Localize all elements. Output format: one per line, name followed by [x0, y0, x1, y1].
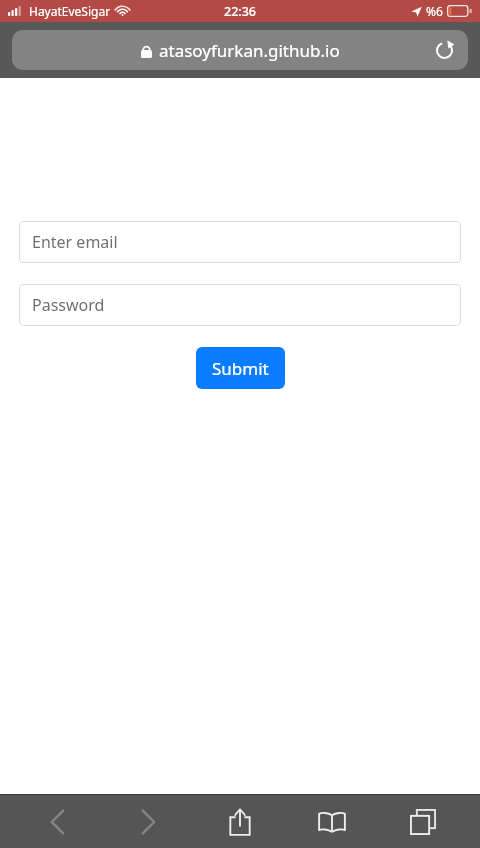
button[interactable]: Submit — [196, 347, 285, 389]
button[interactable]: Tabs — [388, 795, 458, 848]
button[interactable]: Enter email — [19, 221, 461, 263]
button[interactable]: atasoyfurkan.github.io — [12, 30, 468, 70]
staticText: atasoyfurkan.github.io — [159, 39, 340, 62]
staticText: Enter email — [32, 231, 118, 253]
staticText: %6 — [426, 3, 443, 19]
button[interactable]: Password — [19, 284, 461, 326]
staticText: Password — [32, 294, 105, 316]
button[interactable]: Reload page — [426, 32, 462, 68]
button[interactable]: Bookmarks — [297, 795, 367, 848]
staticText: HayatEveSigar — [29, 3, 111, 19]
staticText: Submit — [212, 357, 269, 380]
button[interactable]: Back — [22, 795, 92, 848]
staticText: 22:36 — [224, 3, 257, 20]
button[interactable]: Share — [205, 795, 275, 848]
button[interactable]: Forward — [113, 795, 183, 848]
